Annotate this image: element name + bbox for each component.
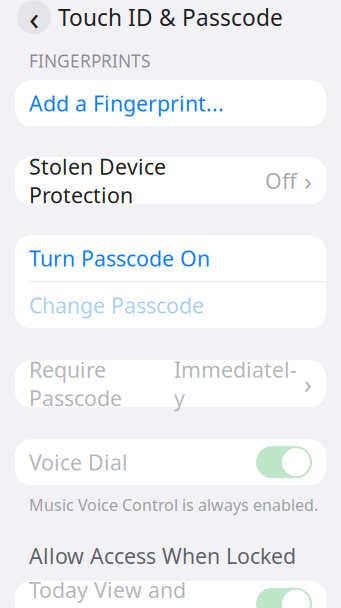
button[interactable]: Require Passcode (15, 360, 326, 407)
staticText: Music Voice Control is always enabled. (29, 494, 318, 515)
staticText: Allow Access When Locked (29, 541, 296, 570)
staticText: Touch ID & Passcode (58, 2, 283, 32)
staticText: Add a Fingerprint... (29, 89, 224, 117)
staticText: Require Passcode (29, 355, 122, 412)
staticText: FINGERPRINTS (29, 49, 151, 72)
button[interactable]: Change Passcode (15, 282, 326, 328)
button[interactable]: Stolen Device Protection (15, 157, 326, 204)
button[interactable]: Voice Dial (15, 439, 326, 485)
staticText: › (304, 367, 312, 400)
staticText: Immediately (174, 355, 297, 412)
staticText: ‹ (29, 0, 39, 39)
staticText: › (304, 164, 312, 197)
staticText: Voice Dial (29, 448, 128, 476)
staticText: Off (265, 167, 297, 195)
button[interactable]: Today View and Search (15, 581, 326, 608)
staticText: Change Passcode (29, 291, 204, 319)
staticText: Turn Passcode On (29, 244, 210, 272)
button[interactable]: Add a Fingerprint... (15, 80, 326, 126)
staticText: Stolen Device Protection (29, 152, 166, 209)
button[interactable]: Turn Passcode On (15, 235, 326, 281)
button[interactable]: Back (17, 0, 51, 34)
staticText: Today View and Search (29, 575, 186, 608)
